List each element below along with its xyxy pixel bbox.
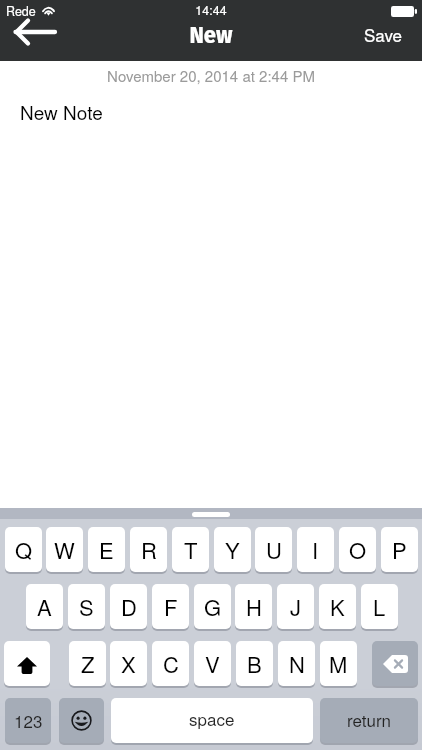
staticText: G — [204, 591, 222, 623]
staticText: Rede — [6, 2, 36, 20]
button[interactable]: G — [194, 584, 231, 629]
button[interactable]: F — [152, 584, 189, 629]
staticText: M — [329, 648, 348, 680]
button[interactable]: X — [110, 641, 147, 686]
staticText: 14:44 — [0, 1, 422, 19]
staticText: space — [189, 706, 235, 730]
button[interactable]: E — [88, 527, 125, 572]
staticText: D — [121, 591, 137, 623]
staticText: Save — [364, 22, 403, 46]
button[interactable]: Back — [2, 12, 64, 52]
button[interactable]: Emoji — [59, 698, 104, 743]
button[interactable]: Delete — [372, 641, 418, 686]
staticText: return — [347, 707, 392, 731]
button[interactable]: M — [320, 641, 357, 686]
staticText: W — [54, 534, 75, 566]
button[interactable]: Q — [5, 527, 42, 572]
button[interactable]: N — [278, 641, 315, 686]
button[interactable]: Save — [348, 16, 422, 53]
button[interactable]: Shift — [4, 641, 50, 686]
staticText: November 20, 2014 at 2:44 PM — [0, 65, 422, 86]
staticText: New Note — [20, 98, 103, 125]
staticText: 123 — [14, 708, 43, 732]
button[interactable]: space — [111, 698, 313, 743]
button[interactable]: L — [361, 584, 398, 629]
staticText: Q — [15, 534, 33, 566]
staticText: H — [246, 591, 262, 623]
staticText: X — [121, 648, 136, 680]
button[interactable]: P — [381, 527, 418, 572]
button[interactable]: 123 — [5, 698, 51, 743]
staticText: K — [330, 591, 345, 623]
staticText: R — [141, 534, 157, 566]
staticText: N — [289, 648, 305, 680]
staticText: V — [205, 648, 220, 680]
button[interactable]: Z — [69, 641, 106, 686]
button[interactable]: C — [152, 641, 189, 686]
button[interactable]: R — [130, 527, 167, 572]
button[interactable]: K — [319, 584, 356, 629]
staticText: U — [266, 534, 282, 566]
staticText: A — [37, 591, 52, 623]
button[interactable]: Y — [214, 527, 251, 572]
staticText: E — [99, 534, 114, 566]
staticText: Z — [81, 648, 95, 680]
button[interactable]: T — [172, 527, 209, 572]
staticText: I — [312, 534, 319, 566]
button[interactable]: H — [235, 584, 272, 629]
staticText: Y — [225, 534, 240, 566]
button[interactable]: S — [68, 584, 105, 629]
staticText: C — [163, 648, 179, 680]
staticText: P — [392, 534, 407, 566]
button[interactable]: A — [26, 584, 63, 629]
staticText: O — [349, 534, 367, 566]
button[interactable]: J — [277, 584, 314, 629]
button[interactable]: return — [320, 698, 418, 743]
button[interactable]: U — [255, 527, 292, 572]
staticText: F — [164, 591, 178, 623]
button[interactable]: D — [110, 584, 147, 629]
button[interactable]: W — [46, 527, 83, 572]
button[interactable]: V — [194, 641, 231, 686]
staticText: J — [290, 591, 302, 623]
staticText: L — [373, 591, 386, 623]
button[interactable]: B — [236, 641, 273, 686]
staticText: New — [0, 21, 422, 50]
button[interactable]: I — [297, 527, 334, 572]
staticText: B — [247, 648, 262, 680]
staticText: T — [184, 534, 198, 566]
button[interactable]: O — [339, 527, 376, 572]
staticText: S — [79, 591, 94, 623]
